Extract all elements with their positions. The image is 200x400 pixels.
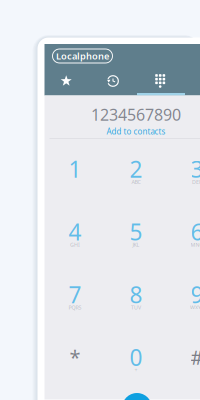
staticText: 0 xyxy=(129,342,142,372)
staticText: ABC xyxy=(131,178,140,186)
staticText: 5 xyxy=(129,217,142,247)
staticText: JKL xyxy=(132,241,139,248)
staticText: Add to contacts xyxy=(106,126,165,137)
button[interactable]: Call xyxy=(122,393,152,400)
staticText: 7 xyxy=(68,279,81,309)
staticText: DEF xyxy=(192,178,200,186)
button[interactable]: 8 xyxy=(105,270,166,333)
staticText: 3 xyxy=(190,154,200,184)
button[interactable]: 7 xyxy=(44,270,105,333)
button[interactable]: Recents xyxy=(93,71,133,91)
button[interactable]: # xyxy=(166,333,200,396)
button[interactable]: Add to contacts xyxy=(44,126,200,136)
button[interactable]: 1 xyxy=(44,145,105,208)
button[interactable]: 0 xyxy=(105,333,166,396)
staticText: + xyxy=(134,367,137,374)
staticText: PQRS xyxy=(68,304,81,311)
staticText: 1234567890 xyxy=(91,104,181,125)
button[interactable]: Favorites xyxy=(46,71,86,91)
button[interactable]: 3 xyxy=(166,145,200,208)
button[interactable]: 9 xyxy=(166,270,200,333)
staticText: 8 xyxy=(129,279,142,309)
staticText: # xyxy=(190,344,200,370)
staticText: TUV xyxy=(131,304,141,311)
button[interactable]: 5 xyxy=(105,208,166,270)
button[interactable]: Keypad xyxy=(140,71,180,91)
staticText: 4 xyxy=(68,217,81,247)
staticText: 2 xyxy=(129,154,142,184)
staticText: 1 xyxy=(68,154,81,184)
staticText: * xyxy=(69,344,80,370)
staticText: WXYZ xyxy=(190,304,200,311)
staticText: 9 xyxy=(190,279,200,309)
button[interactable]: 4 xyxy=(44,208,105,270)
staticText: GHI xyxy=(70,241,80,248)
button[interactable]: * xyxy=(44,333,105,396)
button[interactable]: Localphone xyxy=(52,49,112,63)
staticText: MNO xyxy=(190,241,200,248)
button[interactable]: 6 xyxy=(166,208,200,270)
staticText: Localphone xyxy=(56,50,109,62)
button[interactable]: 2 xyxy=(105,145,166,208)
staticText: 6 xyxy=(190,217,200,247)
